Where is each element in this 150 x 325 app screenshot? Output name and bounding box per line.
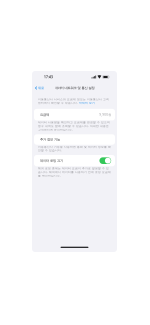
staticText: 요금제 [40,113,49,117]
staticText: 해외 로밍 중에는 데이터 요금이 추가로 발생할 수 있습니다. 해외에서 데… [38,167,111,177]
button[interactable]: 추가 정보 기능 [34,134,115,145]
button[interactable]: 뒤로 [32,84,44,92]
button[interactable]: 자세히 보기 [79,101,95,105]
staticText: 자세히 보기 [79,101,95,105]
staticText: 9,900원 [99,113,111,117]
staticText: 17:43 [44,75,53,79]
staticText: 이동통신사 기능을 사용하면 통화 및 데이터 정보를 확인할 수 있습니다. [38,145,111,152]
staticText: 뒤로 [38,86,44,90]
button[interactable]: 요금제 [34,109,115,120]
staticText: 센터에서 확인할 수 있습니다. [38,101,78,105]
staticText: 데이터 네트워크 및 통신 설정 [54,86,94,90]
staticText: 데이터 로밍 끄기 [40,159,63,163]
staticText: 추가 정보 기능 [40,137,60,141]
button[interactable]: 데이터 로밍 끄기 [34,155,115,166]
staticText: 이동통신사 서비스와 요금제 정보는 이동통신사 고객 [38,98,109,101]
staticText: 데이터 사용량을 확인하고 요금제를 변경할 수 있으며 청구 내역도 함께 조… [38,121,110,131]
